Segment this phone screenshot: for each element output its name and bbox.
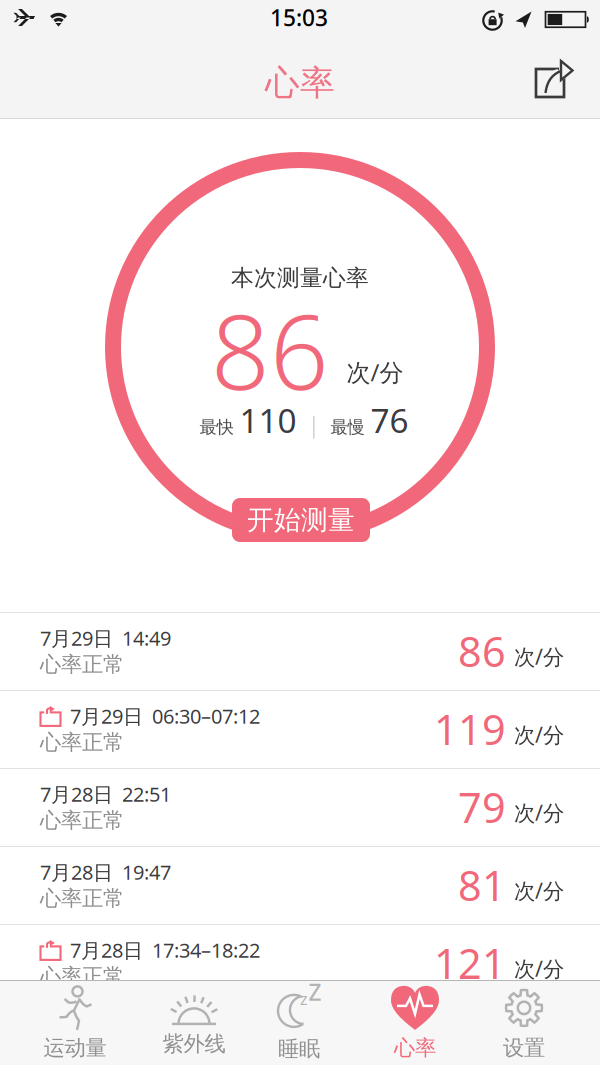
staticText: 7月28日	[40, 781, 113, 807]
staticText: 开始测量	[247, 504, 355, 536]
staticText: ｜	[302, 411, 324, 439]
staticText: 7月29日	[40, 625, 113, 651]
staticText: 06:30–07:12	[152, 703, 260, 729]
staticText: 7月29日	[70, 703, 143, 729]
button[interactable]: 7月29日	[0, 690, 600, 767]
staticText: 次/分	[514, 876, 564, 905]
staticText: 14:49	[122, 625, 171, 651]
staticText: 次/分	[514, 720, 564, 749]
staticText: 79	[458, 780, 506, 834]
button[interactable]: 开始测量	[232, 498, 370, 542]
button[interactable]: 心率	[359, 983, 471, 1063]
button[interactable]: 7月29日	[0, 612, 600, 689]
button[interactable]: 7月28日	[0, 924, 600, 1001]
staticText: 次/分	[514, 954, 564, 983]
staticText: 紫外线	[162, 1031, 225, 1057]
staticText: 次/分	[514, 798, 564, 827]
staticText: 最慢	[330, 416, 364, 438]
staticText: 设置	[503, 1035, 545, 1061]
staticText: 86	[458, 624, 506, 678]
staticText: 心率正常	[40, 807, 124, 833]
staticText: z	[300, 988, 308, 1009]
staticText: 最快	[199, 416, 233, 438]
staticText: 心率正常	[40, 651, 124, 677]
staticText: 心率正常	[40, 885, 124, 911]
staticText: 心率	[265, 62, 335, 104]
staticText: 心率正常	[40, 963, 124, 989]
staticText: 7月28日	[40, 859, 113, 885]
button[interactable]: Share	[530, 53, 580, 103]
staticText: 110	[239, 398, 296, 442]
staticText: 76	[370, 398, 408, 442]
staticText: 81	[458, 858, 506, 912]
button[interactable]: 设置	[468, 983, 580, 1063]
button[interactable]: z	[243, 983, 355, 1063]
button[interactable]: 运动量	[19, 983, 131, 1063]
staticText: 19:47	[122, 859, 171, 885]
staticText: 22:51	[122, 781, 171, 807]
staticText: 次/分	[346, 356, 403, 388]
staticText: 次/分	[514, 642, 564, 671]
staticText: 运动量	[43, 1035, 106, 1061]
staticText: 86	[211, 282, 329, 418]
staticText: 7月28日	[70, 937, 143, 963]
button[interactable]: 7月28日	[0, 846, 600, 923]
staticText: 15:03	[270, 2, 328, 32]
staticText: 121	[434, 936, 506, 990]
staticText: 17:34–18:22	[152, 937, 260, 963]
staticText: 睡眠	[278, 1036, 320, 1062]
button[interactable]: 紫外线	[138, 983, 250, 1063]
staticText: 本次测量心率	[231, 264, 369, 292]
staticText: 心率	[394, 1035, 436, 1061]
staticText: 119	[434, 702, 506, 756]
staticText: Z	[308, 977, 321, 1007]
button[interactable]: 7月28日	[0, 768, 600, 845]
staticText: 心率正常	[40, 729, 124, 755]
